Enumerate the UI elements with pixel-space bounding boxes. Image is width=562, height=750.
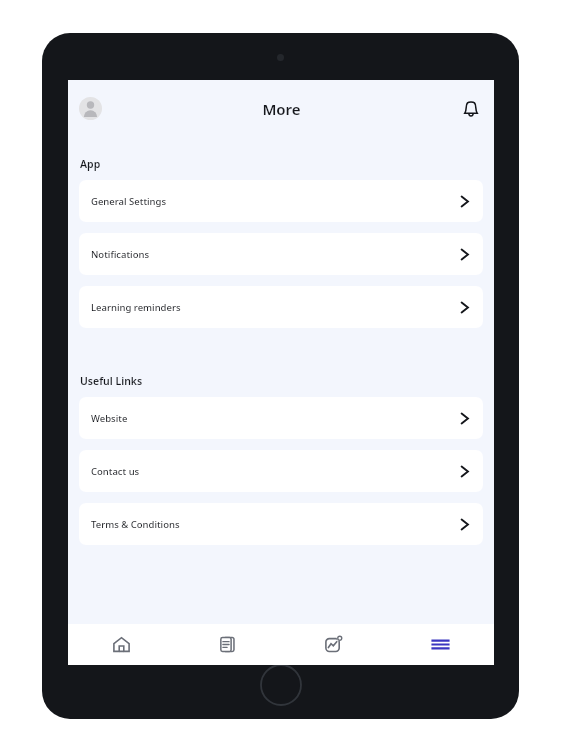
button[interactable]: Profile [79, 97, 102, 120]
staticText: Useful Links [80, 374, 143, 388]
button[interactable]: Contact us [79, 450, 483, 492]
button[interactable]: Courses [174, 624, 280, 665]
staticText: Contact us [91, 465, 140, 478]
button[interactable]: More [387, 624, 494, 665]
staticText: Website [91, 412, 128, 425]
button[interactable]: Learning reminders [79, 286, 483, 328]
button[interactable]: General Settings [79, 180, 483, 222]
button[interactable]: Terms & Conditions [79, 503, 483, 545]
staticText: General Settings [91, 195, 167, 208]
staticText: Notifications [91, 248, 150, 261]
button[interactable]: Home [68, 624, 174, 665]
staticText: More [262, 99, 301, 119]
staticText: Terms & Conditions [91, 518, 180, 531]
button[interactable]: Notifications [456, 94, 485, 123]
staticText: Learning reminders [91, 301, 181, 314]
button[interactable]: Website [79, 397, 483, 439]
button[interactable]: Progress [280, 624, 387, 665]
staticText: App [80, 157, 101, 171]
button[interactable]: Notifications [79, 233, 483, 275]
